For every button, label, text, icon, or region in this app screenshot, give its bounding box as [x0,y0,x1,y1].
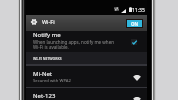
staticText: Secured with WPA2 [33,78,71,84]
other: Settings [31,19,37,25]
staticText: 11:35 [132,7,145,14]
button[interactable]: ON [127,20,142,27]
button[interactable]: Net-123 [26,87,147,100]
staticText: Net-123 [33,92,56,100]
button[interactable]: Notify me [26,30,147,52]
staticText: Notify me [33,31,61,39]
staticText: Wi-Fi [42,18,55,25]
staticText: When launching apps, notify me when Wi-F… [33,39,114,50]
staticText: ON [131,21,139,27]
staticText: Mi-Net [33,70,53,78]
button[interactable]: Mi-Net [26,65,147,87]
button[interactable]: Settings [26,15,147,31]
button[interactable]: Notify me checkbox [131,39,137,45]
staticText: WI-FI NETWORKS [33,56,62,61]
